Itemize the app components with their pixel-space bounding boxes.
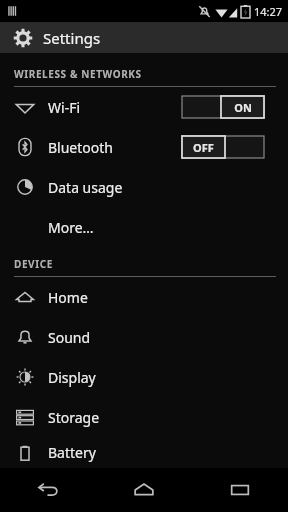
staticText: WIRELESS & NETWORKS — [14, 67, 142, 81]
button[interactable]: Recent apps — [192, 468, 288, 512]
button[interactable]: More… — [0, 207, 288, 247]
button[interactable]: Display — [0, 357, 288, 397]
staticText: OFF — [193, 140, 214, 155]
staticText: 14:27 — [254, 4, 283, 19]
button[interactable]: Data usage — [0, 167, 288, 207]
button[interactable]: Storage — [0, 397, 288, 437]
button[interactable]: Wi-Fi — [0, 87, 288, 127]
button[interactable]: Sound — [0, 317, 288, 357]
staticText: Storage — [48, 408, 100, 427]
staticText: Home — [48, 288, 88, 307]
staticText: Wi-Fi — [48, 98, 81, 117]
staticText: Sound — [48, 328, 91, 347]
button[interactable]: Bluetooth — [0, 127, 288, 167]
button[interactable]: Switch on — [182, 96, 264, 118]
button[interactable]: Back — [0, 468, 96, 512]
staticText: ON — [234, 100, 252, 115]
staticText: Display — [48, 368, 96, 387]
staticText: Bluetooth — [48, 138, 113, 157]
staticText: Data usage — [48, 178, 123, 197]
staticText: Settings — [43, 28, 101, 48]
button[interactable]: Battery — [0, 437, 288, 468]
staticText: Battery — [48, 443, 96, 462]
button[interactable]: Switch off — [182, 136, 264, 158]
staticText: DEVICE — [14, 257, 53, 271]
button[interactable]: Home — [96, 468, 192, 512]
button[interactable]: Home — [0, 277, 288, 317]
staticText: More… — [48, 218, 94, 237]
